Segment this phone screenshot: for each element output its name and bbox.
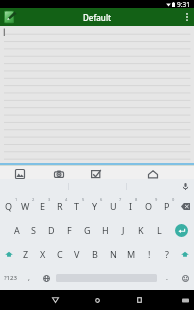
staticText: C <box>57 248 63 260</box>
button[interactable]: Back <box>45 290 65 310</box>
button[interactable]: Home <box>87 290 107 310</box>
button[interactable]: Enter <box>168 218 194 242</box>
button[interactable]: L <box>150 218 168 242</box>
staticText: O <box>145 200 153 212</box>
button[interactable]: M <box>122 242 140 266</box>
button[interactable]: Insert image <box>11 166 29 179</box>
staticText: T <box>74 200 80 212</box>
button[interactable]: V <box>68 242 86 266</box>
button[interactable]: . <box>158 266 176 290</box>
staticText: , <box>28 273 30 283</box>
button[interactable]: Q <box>0 194 17 218</box>
button[interactable]: Emoji <box>176 266 194 290</box>
button[interactable]: A <box>8 218 25 242</box>
staticText: 0 <box>172 197 175 202</box>
staticText: ? <box>165 248 169 260</box>
staticText: P <box>164 200 170 212</box>
staticText: R <box>57 200 63 212</box>
staticText: 1 <box>15 197 18 202</box>
button[interactable]: T <box>68 194 86 218</box>
button[interactable]: U <box>104 194 122 218</box>
staticText: Q <box>5 200 13 212</box>
staticText: B <box>92 248 98 260</box>
button[interactable]: Take photo <box>50 166 68 179</box>
staticText: Default <box>83 12 112 23</box>
button[interactable]: , <box>20 266 37 290</box>
button[interactable]: Y <box>86 194 104 218</box>
staticText: Z <box>23 248 29 260</box>
button[interactable]: C <box>51 242 68 266</box>
button[interactable]: Hide keyboard <box>175 290 194 310</box>
button[interactable]: W <box>17 194 34 218</box>
staticText: H <box>102 224 109 236</box>
button[interactable]: G <box>78 218 96 242</box>
button[interactable]: ! <box>140 242 158 266</box>
button[interactable]: F <box>60 218 78 242</box>
staticText: 7 <box>119 197 122 202</box>
staticText: J <box>122 224 125 236</box>
button[interactable]: H <box>96 218 114 242</box>
button[interactable]: Change keyboard <box>37 266 55 290</box>
staticText: U <box>110 200 117 212</box>
button[interactable]: X <box>34 242 51 266</box>
button[interactable]: More options <box>180 8 194 26</box>
staticText: ! <box>148 248 151 260</box>
staticText: Y <box>92 200 98 212</box>
button[interactable]: Voice input <box>176 179 194 194</box>
staticText: 3 <box>48 197 51 202</box>
button[interactable]: ?123 <box>0 266 20 290</box>
button[interactable]: Home <box>144 166 162 179</box>
button[interactable]: D <box>42 218 60 242</box>
button[interactable]: B <box>86 242 104 266</box>
staticText: I <box>129 200 133 212</box>
button[interactable]: I <box>122 194 140 218</box>
staticText: D <box>48 224 55 236</box>
staticText: . <box>166 273 168 283</box>
staticText: X <box>40 248 46 260</box>
staticText: 2 <box>32 197 35 202</box>
button[interactable]: K <box>132 218 150 242</box>
button[interactable]: Shift <box>0 242 17 266</box>
staticText: 8 <box>135 197 138 202</box>
button[interactable]: S <box>25 218 42 242</box>
staticText: 5 <box>82 197 85 202</box>
button[interactable]: O <box>140 194 158 218</box>
button[interactable]: J <box>114 218 132 242</box>
button[interactable]: Backspace <box>176 194 194 218</box>
staticText: N <box>110 248 117 260</box>
button[interactable]: Notes app <box>3 10 17 24</box>
button[interactable]: P <box>158 194 176 218</box>
button[interactable]: Checklist <box>87 166 105 179</box>
staticText: ?123 <box>4 274 17 282</box>
button[interactable]: Recent apps <box>129 290 149 310</box>
staticText: G <box>84 224 91 236</box>
button[interactable]: ? <box>158 242 176 266</box>
staticText: F <box>67 224 72 236</box>
staticText: V <box>74 248 80 260</box>
staticText: 6 <box>100 197 103 202</box>
staticText: K <box>138 224 144 236</box>
staticText: E <box>40 200 46 212</box>
button[interactable]: N <box>104 242 122 266</box>
staticText: 4 <box>65 197 68 202</box>
staticText: A <box>14 224 20 236</box>
button[interactable]: E <box>34 194 51 218</box>
staticText: W <box>21 200 30 212</box>
button[interactable]: Shift <box>176 242 194 266</box>
button[interactable]: Z <box>17 242 34 266</box>
button[interactable]: R <box>51 194 68 218</box>
staticText: 9:31 <box>177 0 190 8</box>
staticText: S <box>31 224 36 236</box>
staticText: 9 <box>155 197 158 202</box>
staticText: M <box>127 248 136 260</box>
staticText: L <box>157 224 162 236</box>
